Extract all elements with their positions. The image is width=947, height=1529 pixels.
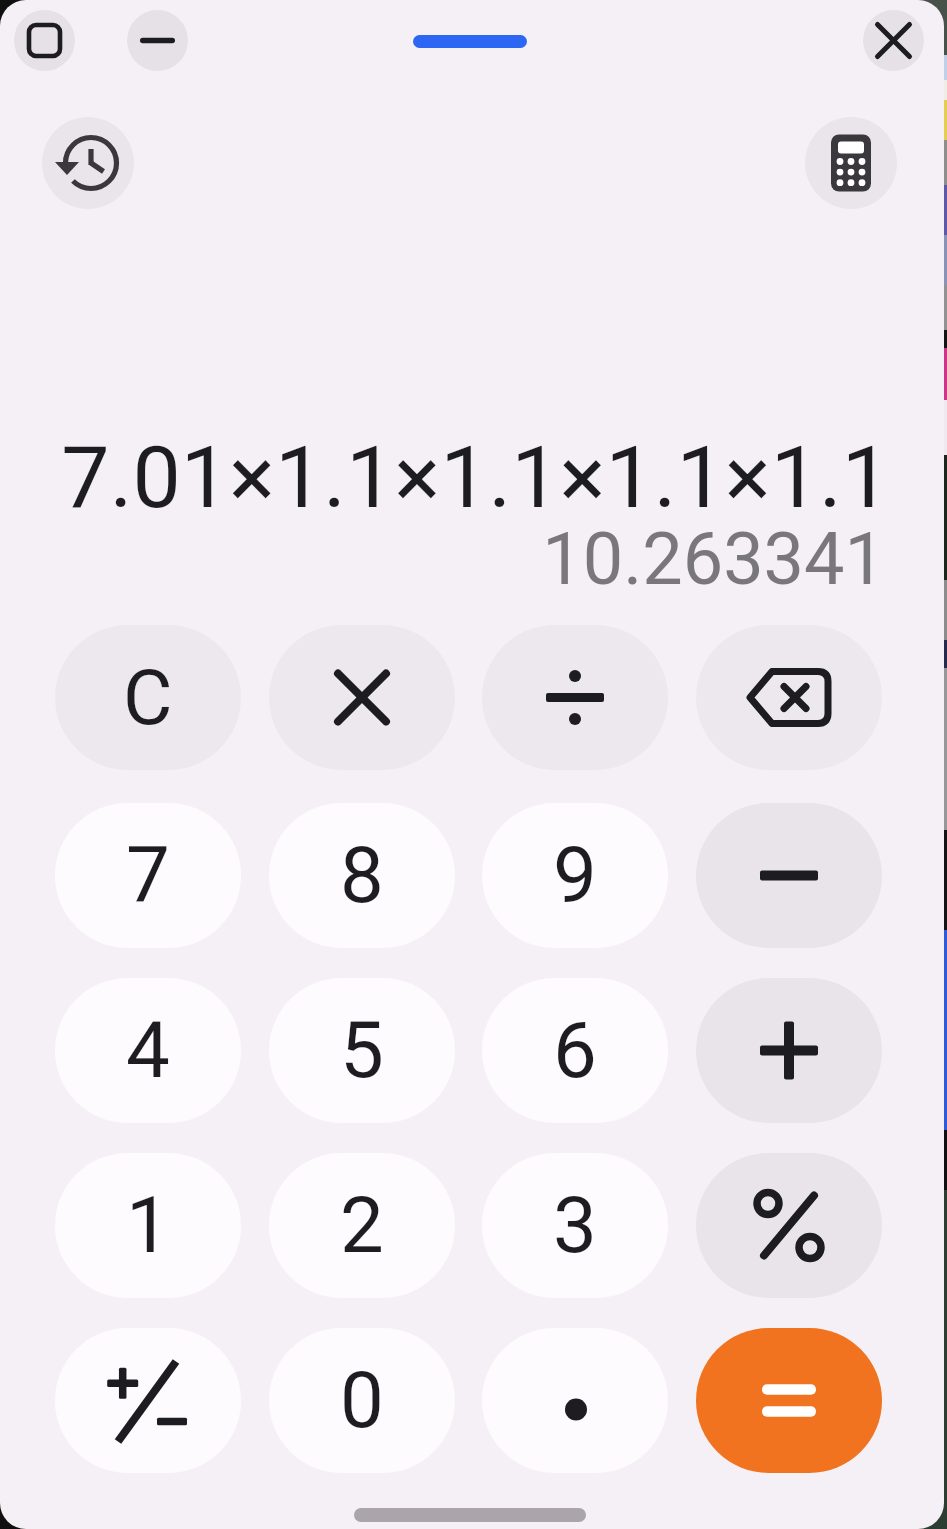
button[interactable] [413,35,527,48]
button[interactable] [55,1328,241,1473]
button[interactable]: 1 [55,1153,241,1298]
button[interactable] [127,10,188,71]
staticText: 7.01×1.1×1.1×1.1×1.1 [61,427,890,528]
staticText: C [123,653,173,742]
button[interactable] [696,978,882,1123]
button[interactable]: 7 [55,803,241,948]
button[interactable] [14,10,75,71]
button[interactable]: 6 [482,978,668,1123]
button[interactable] [42,117,134,209]
button[interactable]: 9 [482,803,668,948]
staticText: 4 [126,1005,170,1096]
button[interactable] [482,625,668,770]
staticText: 1 [126,1180,170,1271]
staticText: 5 [340,1005,384,1096]
button[interactable] [482,1328,668,1473]
button[interactable] [696,625,882,770]
button[interactable] [696,803,882,948]
button[interactable]: 2 [269,1153,455,1298]
button[interactable] [696,1153,882,1298]
button[interactable] [805,117,897,209]
staticText: 10.263341 [542,517,885,601]
button[interactable]: 0 [269,1328,455,1473]
button[interactable]: 3 [482,1153,668,1298]
button[interactable] [863,10,924,71]
staticText: 7 [126,830,170,921]
button[interactable]: 8 [269,803,455,948]
staticText: 8 [340,830,384,921]
button[interactable] [696,1328,882,1473]
button[interactable] [269,625,455,770]
staticText: 9 [553,830,597,921]
staticText: 2 [340,1180,384,1271]
button[interactable]: C [55,625,241,770]
button[interactable]: 4 [55,978,241,1123]
staticText: 3 [553,1180,597,1271]
staticText: 0 [340,1355,384,1446]
button[interactable]: 5 [269,978,455,1123]
staticText: 6 [553,1005,597,1096]
